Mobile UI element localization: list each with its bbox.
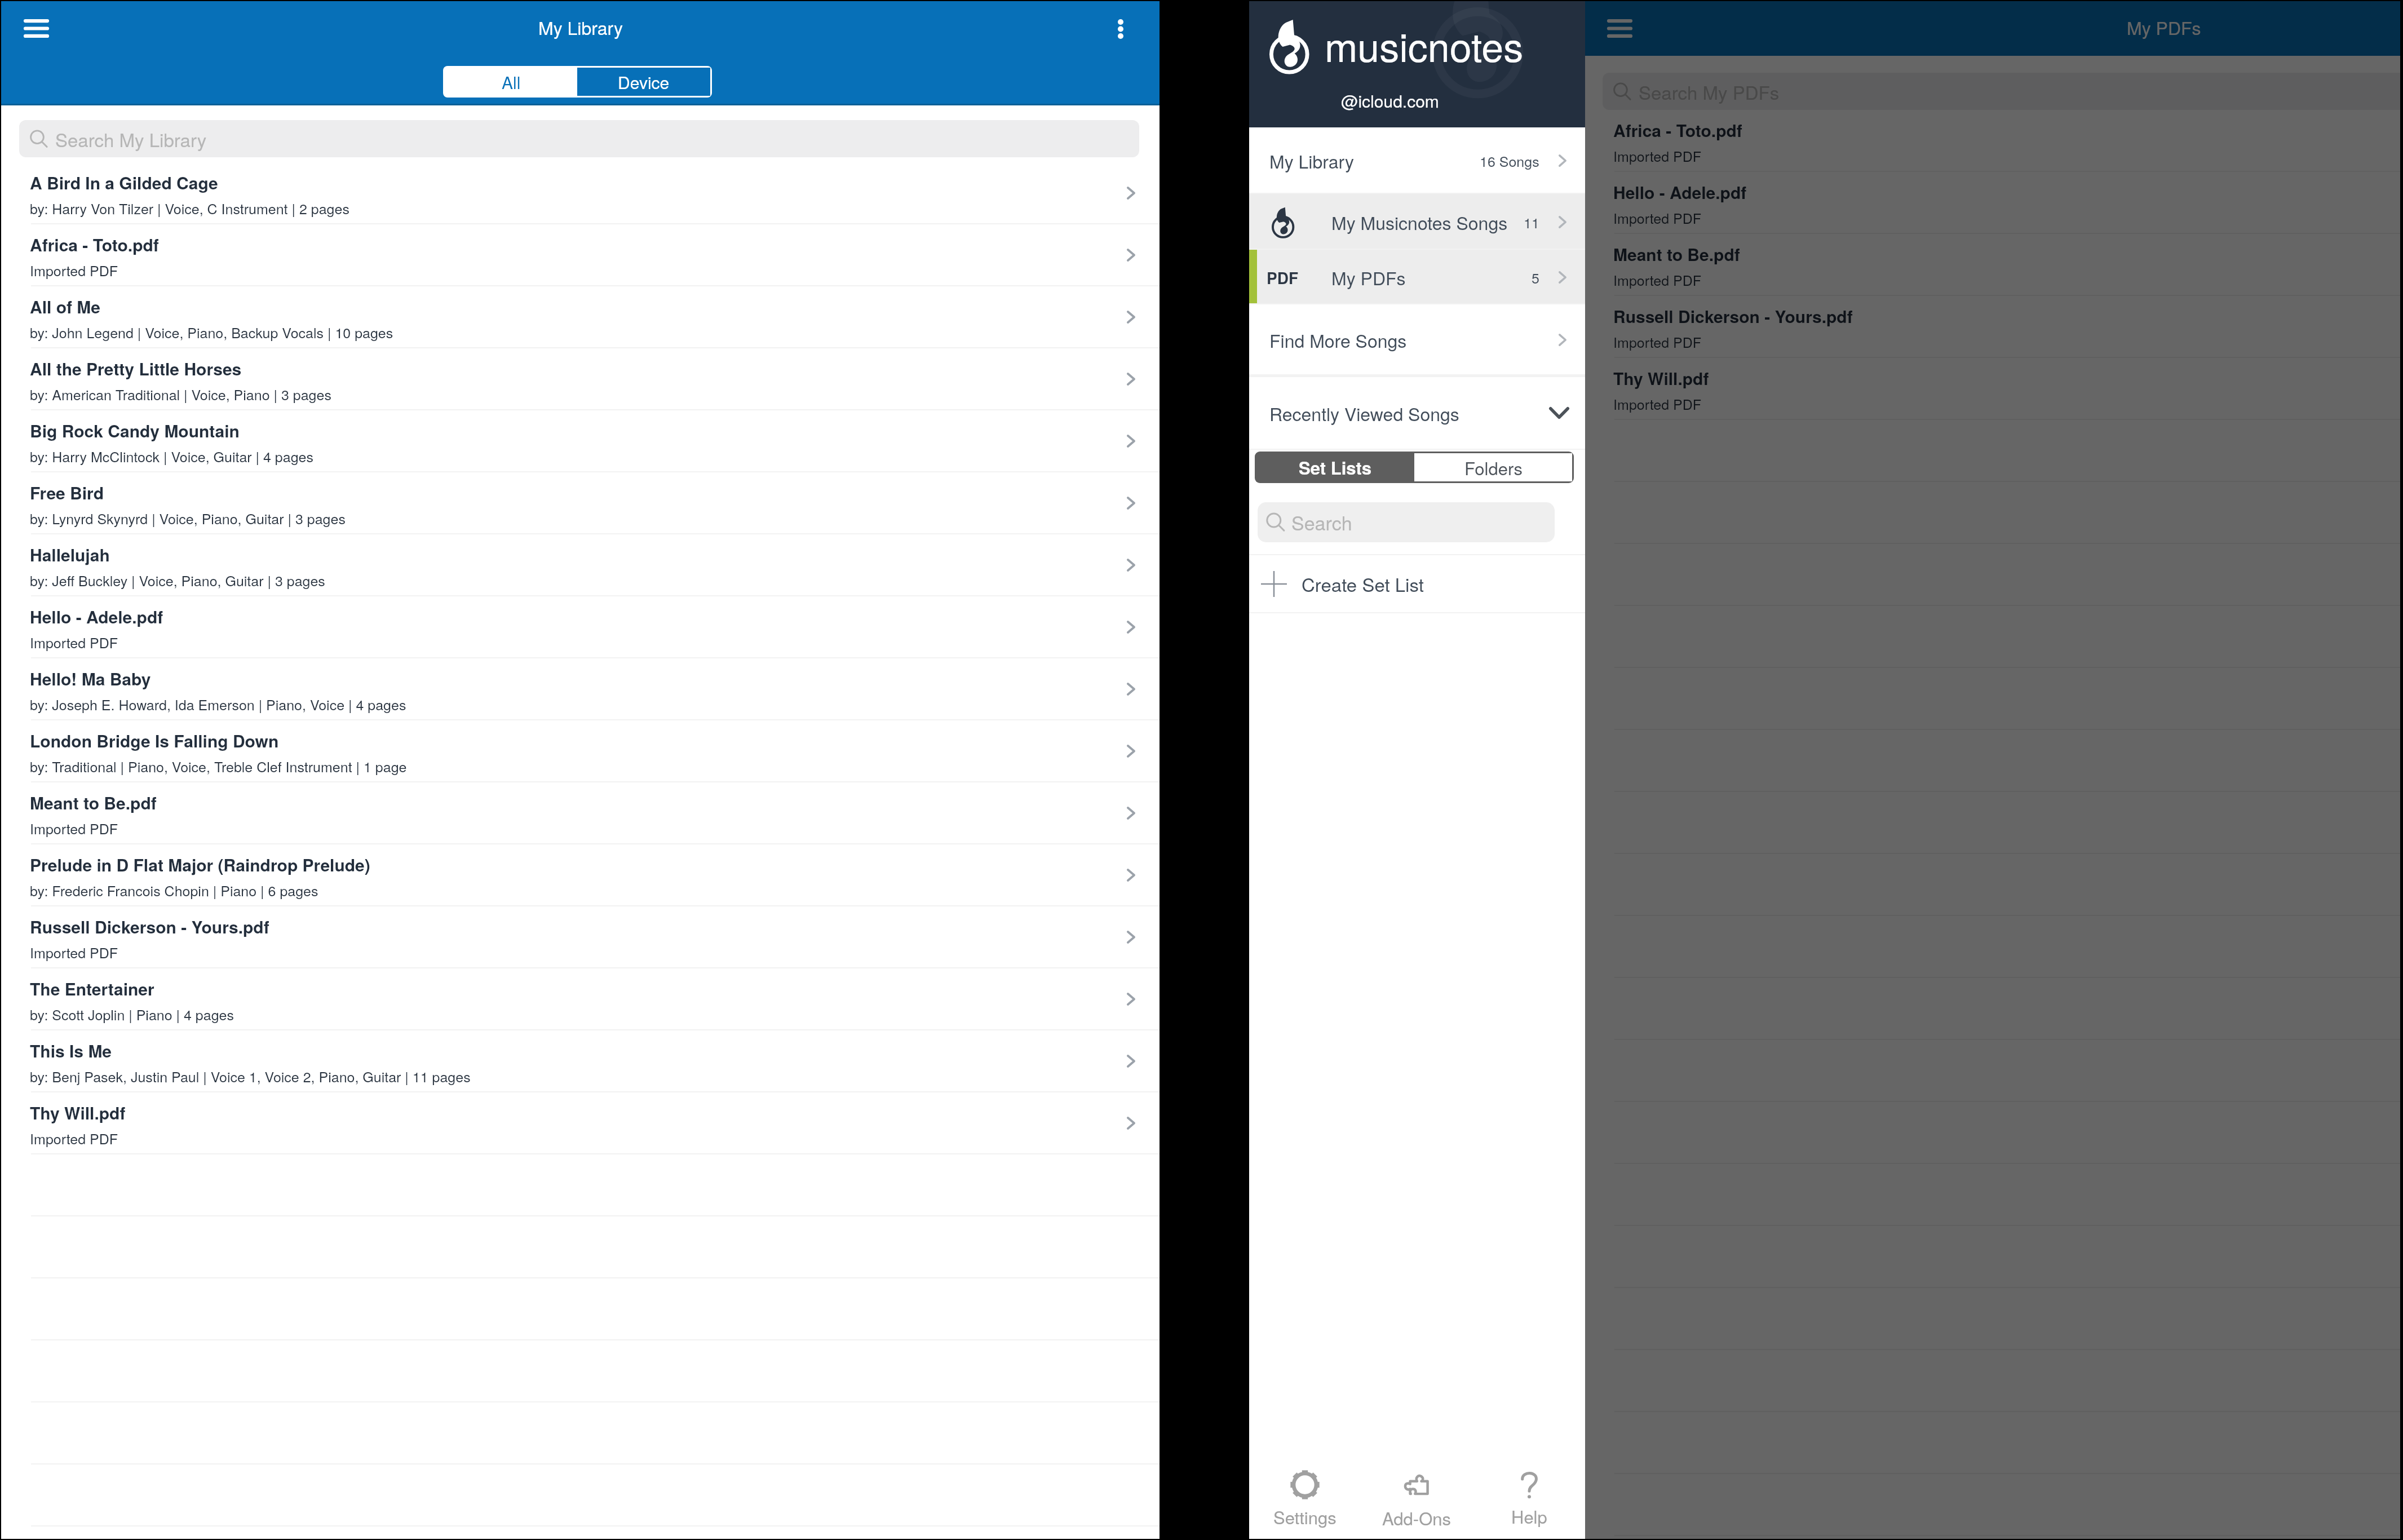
button[interactable]: Hello - Adele.pdf <box>1 596 1160 658</box>
staticText: Find More Songs <box>1269 327 1407 353</box>
staticText: Imported PDF <box>30 260 118 280</box>
staticText: by: Lynyrd Skynyrd | Voice, Piano, Guita… <box>30 508 346 528</box>
button[interactable]: Create Set List <box>1249 555 1585 612</box>
button[interactable]: Search My Library <box>19 120 1139 157</box>
button[interactable]: Set Lists <box>1256 453 1414 481</box>
button[interactable]: PDF <box>1249 250 1585 304</box>
button[interactable]: Device <box>577 68 710 96</box>
button[interactable]: This Is Me <box>1 1030 1160 1092</box>
button[interactable]: Find More Songs <box>1249 304 1585 375</box>
button[interactable]: Recently Viewed Songs <box>1249 377 1585 449</box>
button[interactable]: Hello - Adele.pdf <box>1585 172 2400 234</box>
button[interactable]: Russell Dickerson - Yours.pdf <box>1585 296 2400 358</box>
staticText: Prelude in D Flat Major (Raindrop Prelud… <box>30 852 370 877</box>
staticText: Help <box>1511 1503 1547 1528</box>
button[interactable]: Help <box>1473 1459 1585 1538</box>
button[interactable]: Big Rock Candy Mountain <box>1 410 1160 472</box>
staticText: Big Rock Candy Mountain <box>30 418 240 442</box>
staticText: Thy Will.pdf <box>1613 366 1709 390</box>
button[interactable]: Search <box>1258 502 1555 542</box>
staticText: Russell Dickerson - Yours.pdf <box>30 914 269 939</box>
button[interactable]: All the Pretty Little Horses <box>1 348 1160 410</box>
staticText: Thy Will.pdf <box>30 1100 126 1125</box>
staticText: All <box>502 70 521 94</box>
staticText: This Is Me <box>30 1038 112 1063</box>
staticText: My Library <box>1269 148 1354 174</box>
staticText: Imported PDF <box>30 818 118 838</box>
staticText: Search My Library <box>55 126 207 152</box>
staticText: Imported PDF <box>1613 393 1702 414</box>
staticText: Imported PDF <box>1613 145 1702 166</box>
button[interactable]: Prelude in D Flat Major (Raindrop Prelud… <box>1 844 1160 906</box>
button[interactable]: All <box>445 68 577 96</box>
button[interactable]: My Musicnotes Songs <box>1249 194 1585 250</box>
button[interactable]: A Bird In a Gilded Cage <box>1 162 1160 224</box>
staticText: Search My PDFs <box>1639 78 1780 105</box>
button[interactable]: The Entertainer <box>1 968 1160 1030</box>
staticText: Imported PDF <box>30 632 118 652</box>
staticText: Meant to Be.pdf <box>30 790 157 815</box>
button[interactable]: Hello! Ma Baby <box>1 658 1160 720</box>
button[interactable]: Folders <box>1414 453 1572 481</box>
staticText: Device <box>618 70 670 94</box>
button[interactable]: Africa - Toto.pdf <box>1585 110 2400 172</box>
staticText: Set Lists <box>1299 455 1372 480</box>
staticText: Search <box>1291 508 1352 536</box>
staticText: 11 <box>1524 212 1539 232</box>
staticText: Imported PDF <box>30 1128 118 1148</box>
staticText: @icloud.com <box>1341 88 1439 113</box>
button[interactable]: More options <box>1104 12 1138 46</box>
staticText: by: Benj Pasek, Justin Paul | Voice 1, V… <box>30 1066 471 1086</box>
staticText: Free Bird <box>30 480 104 505</box>
staticText: Imported PDF <box>1613 331 1702 352</box>
staticText: Imported PDF <box>1613 269 1702 290</box>
staticText: Africa - Toto.pdf <box>30 232 159 256</box>
staticText: by: Frederic Francois Chopin | Piano | 6… <box>30 880 318 900</box>
button[interactable]: Settings <box>1249 1459 1361 1538</box>
staticText: by: Harry McClintock | Voice, Guitar | 4… <box>30 446 313 466</box>
staticText: 16 Songs <box>1480 151 1539 171</box>
staticText: Africa - Toto.pdf <box>1613 118 1742 142</box>
staticText: Hallelujah <box>30 542 110 567</box>
button[interactable]: Thy Will.pdf <box>1 1092 1160 1154</box>
staticText: Russell Dickerson - Yours.pdf <box>1613 304 1853 328</box>
staticText: Add-Ons <box>1382 1505 1451 1530</box>
staticText: Meant to Be.pdf <box>1613 242 1740 266</box>
staticText: Hello - Adele.pdf <box>30 604 163 629</box>
button[interactable]: Russell Dickerson - Yours.pdf <box>1 906 1160 968</box>
staticText: Create Set List <box>1302 570 1424 597</box>
staticText: by: John Legend | Voice, Piano, Backup V… <box>30 322 393 342</box>
button[interactable]: Meant to Be.pdf <box>1585 234 2400 296</box>
staticText: Settings <box>1273 1504 1337 1529</box>
staticText: 5 <box>1532 267 1539 287</box>
button[interactable]: Search My PDFs <box>1603 73 2400 110</box>
button[interactable]: Hallelujah <box>1 534 1160 596</box>
button[interactable]: Close navigation drawer <box>1249 1 2400 1539</box>
staticText: Hello - Adele.pdf <box>1613 180 1747 204</box>
staticText: All of Me <box>30 294 101 318</box>
staticText: Hello! Ma Baby <box>30 666 151 691</box>
button[interactable]: Open navigation menu <box>18 12 54 44</box>
button[interactable]: Close navigation menu <box>1601 12 1638 44</box>
button[interactable]: All of Me <box>1 286 1160 348</box>
button[interactable]: Free Bird <box>1 472 1160 534</box>
button[interactable]: My Library <box>1249 127 1585 194</box>
button[interactable]: Thy Will.pdf <box>1585 358 2400 420</box>
staticText: by: Jeff Buckley | Voice, Piano, Guitar … <box>30 570 325 590</box>
staticText: All the Pretty Little Horses <box>30 356 242 380</box>
staticText: London Bridge Is Falling Down <box>30 728 279 753</box>
button[interactable]: Africa - Toto.pdf <box>1 224 1160 286</box>
staticText: My Library <box>538 14 623 40</box>
staticText: by: Harry Von Tilzer | Voice, C Instrume… <box>30 198 349 218</box>
staticText: Imported PDF <box>30 942 118 962</box>
staticText: PDF <box>1267 266 1299 289</box>
button[interactable]: Add-Ons <box>1361 1459 1473 1538</box>
staticText: Imported PDF <box>1613 207 1702 228</box>
button[interactable]: Meant to Be.pdf <box>1 782 1160 844</box>
staticText: by: American Traditional | Voice, Piano … <box>30 384 331 404</box>
staticText: Recently Viewed Songs <box>1269 400 1459 426</box>
staticText: My Musicnotes Songs <box>1331 209 1508 235</box>
staticText: by: Traditional | Piano, Voice, Treble C… <box>30 756 407 776</box>
button[interactable]: London Bridge Is Falling Down <box>1 720 1160 782</box>
staticText: The Entertainer <box>30 976 154 1001</box>
